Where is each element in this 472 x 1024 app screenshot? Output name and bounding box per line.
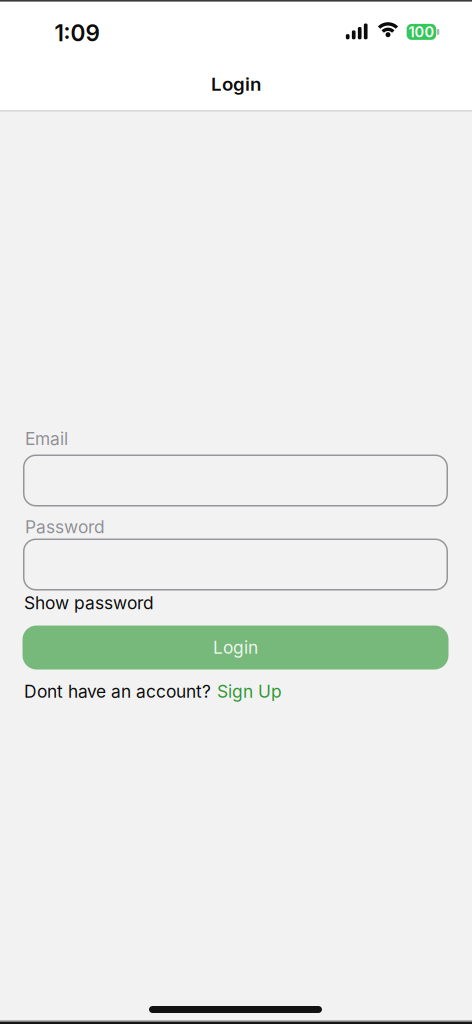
staticText: Password [25,517,105,537]
staticText: Show password [24,593,154,613]
staticText: Login [213,637,258,658]
button[interactable]: Password [23,538,448,590]
staticText: Dont have an account? [24,681,211,702]
button[interactable]: Show password [24,593,154,613]
button[interactable]: Sign Up [217,681,282,702]
staticText: 100 [408,23,434,40]
staticText: Email [25,429,68,449]
staticText: Sign Up [217,681,282,702]
staticText: 1:09 [54,20,99,46]
staticText: Login [211,73,261,95]
button[interactable]: Login [22,625,448,669]
button[interactable]: Email [23,454,448,506]
